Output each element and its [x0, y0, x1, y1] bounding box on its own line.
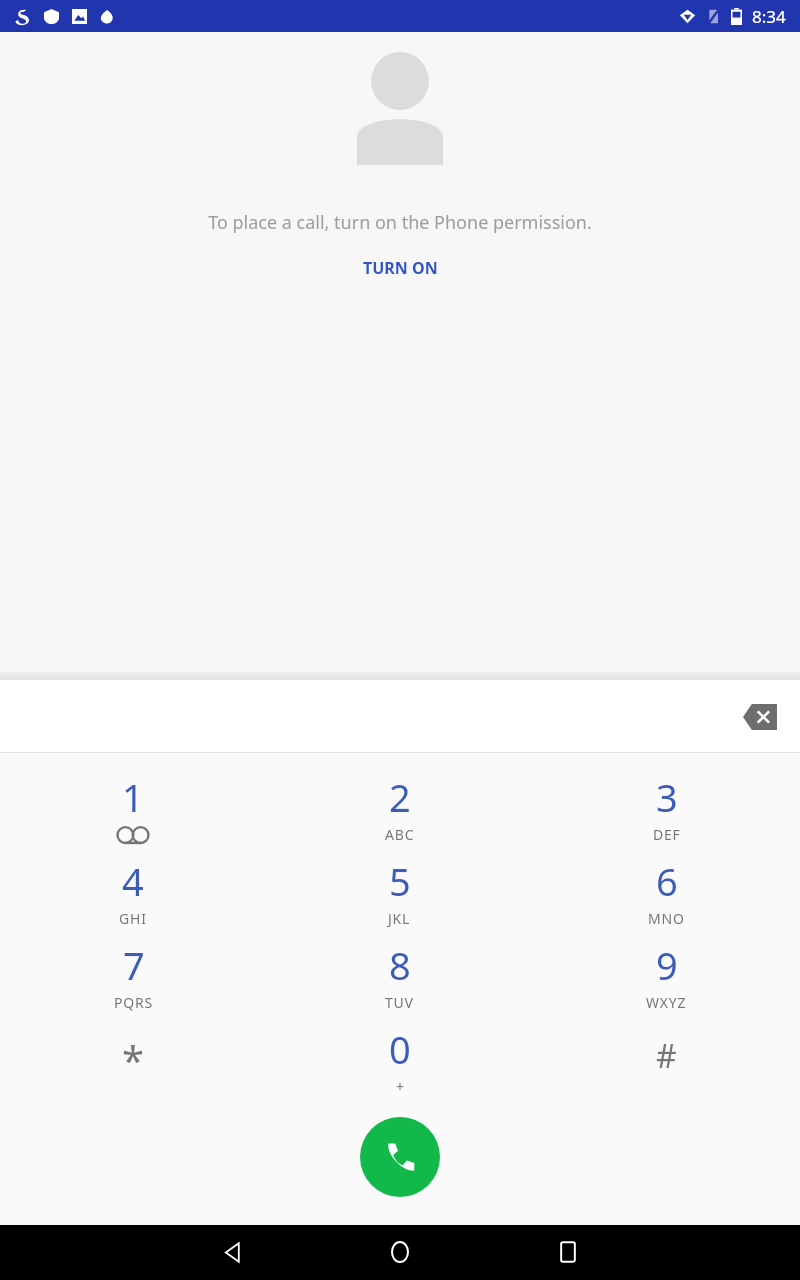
- button[interactable]: Home: [316, 1235, 484, 1269]
- staticText: 1: [122, 771, 144, 823]
- button[interactable]: Recent apps: [484, 1235, 652, 1269]
- staticText: +: [396, 1077, 405, 1096]
- button[interactable]: 3: [533, 765, 800, 849]
- staticText: 7: [123, 939, 145, 991]
- button[interactable]: 6: [533, 849, 800, 933]
- button[interactable]: TURN ON: [353, 253, 448, 283]
- staticText: 2: [389, 771, 411, 823]
- staticText: MNO: [648, 909, 685, 928]
- button[interactable]: *: [0, 1017, 266, 1101]
- button[interactable]: 7: [0, 933, 266, 1017]
- staticText: *: [122, 1032, 145, 1086]
- staticText: To place a call, turn on the Phone permi…: [208, 210, 592, 235]
- staticText: 0: [389, 1023, 411, 1075]
- staticText: 8:34: [752, 5, 786, 28]
- button[interactable]: Back: [148, 1235, 316, 1269]
- staticText: #: [656, 1034, 677, 1078]
- button[interactable]: Backspace: [734, 695, 786, 739]
- staticText: JKL: [388, 909, 411, 928]
- staticText: 5: [389, 855, 411, 907]
- button[interactable]: 1: [0, 765, 266, 849]
- staticText: 8: [389, 939, 411, 991]
- staticText: WXYZ: [646, 993, 687, 1012]
- staticText: 3: [656, 771, 678, 823]
- button[interactable]: 2: [266, 765, 533, 849]
- staticText: 9: [656, 939, 678, 991]
- button[interactable]: 5: [266, 849, 533, 933]
- staticText: ABC: [385, 825, 415, 844]
- button[interactable]: 8: [266, 933, 533, 1017]
- button[interactable]: Call: [360, 1117, 440, 1197]
- staticText: TUV: [385, 993, 414, 1012]
- button[interactable]: 9: [533, 933, 800, 1017]
- staticText: 6: [656, 855, 678, 907]
- staticText: DEF: [653, 825, 681, 844]
- staticText: GHI: [119, 909, 147, 928]
- staticText: PQRS: [114, 993, 153, 1012]
- staticText: TURN ON: [363, 257, 438, 279]
- button[interactable]: 4: [0, 849, 266, 933]
- button[interactable]: #: [533, 1017, 800, 1101]
- staticText: 4: [122, 855, 144, 907]
- button[interactable]: 0: [266, 1017, 533, 1101]
